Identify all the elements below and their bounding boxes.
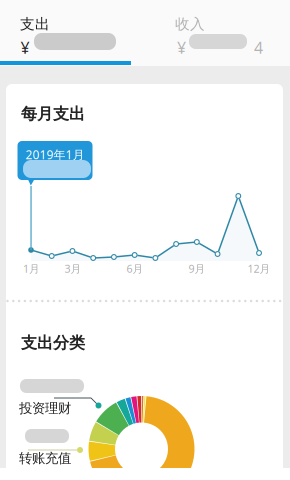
staticText: 2019年1月 xyxy=(25,146,84,162)
staticText: 9月 xyxy=(188,261,205,276)
staticText: 1月 xyxy=(23,261,40,276)
staticText: ¥ xyxy=(177,37,186,58)
staticText: 12月 xyxy=(247,261,270,276)
staticText: 支出 xyxy=(20,15,50,33)
staticText: 3月 xyxy=(64,261,81,276)
staticText: 6月 xyxy=(126,261,143,276)
staticText: 收入 xyxy=(175,15,205,33)
button[interactable]: 支出 xyxy=(0,0,142,61)
staticText: 4 xyxy=(254,37,263,58)
staticText: 每月支出 xyxy=(21,104,85,124)
button[interactable]: 收入 xyxy=(142,0,290,61)
staticText: 支出分类 xyxy=(21,333,85,353)
staticText: 转账充值 xyxy=(19,450,71,466)
staticText: 投资理财 xyxy=(19,400,71,416)
staticText: ¥ xyxy=(20,37,29,58)
